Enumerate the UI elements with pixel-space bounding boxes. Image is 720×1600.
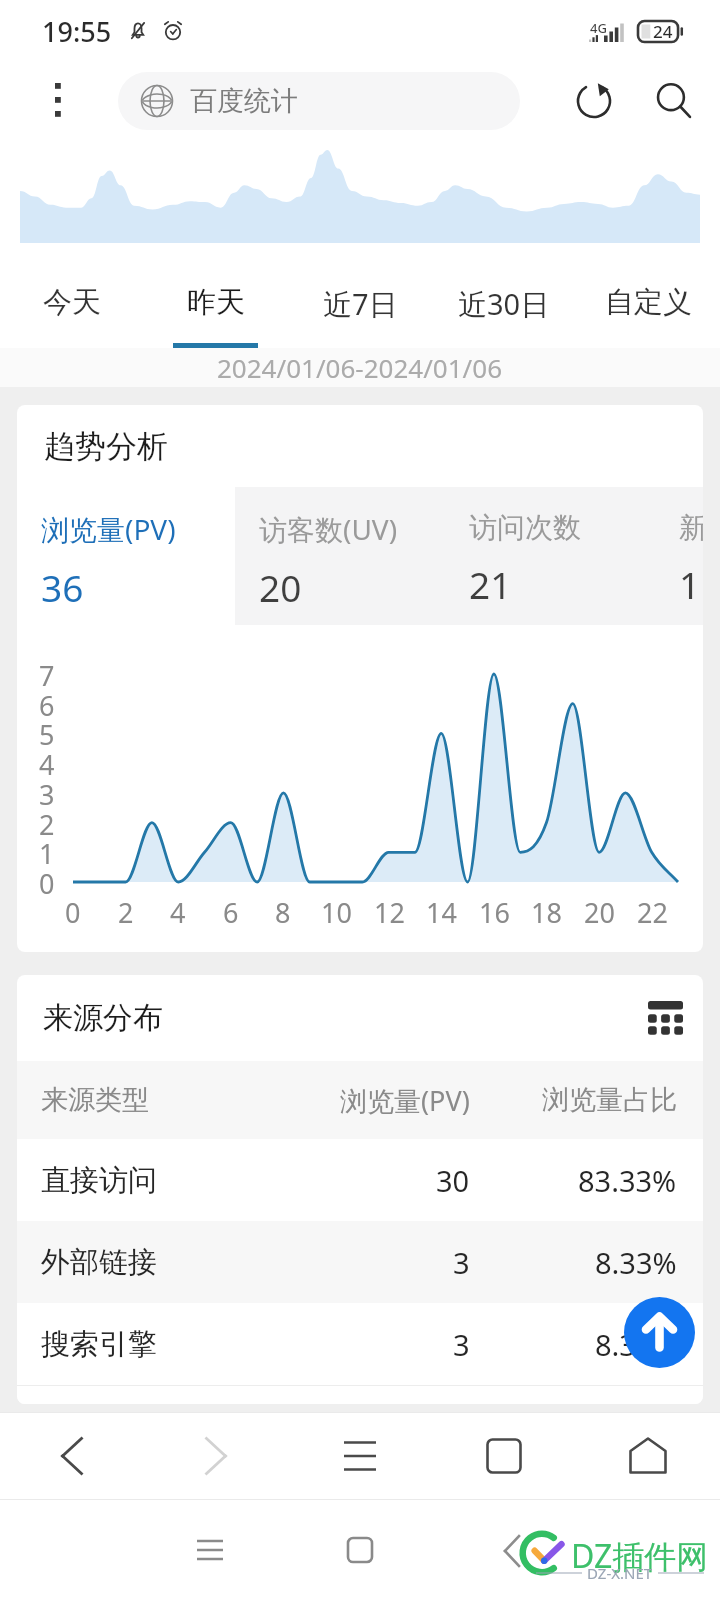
staticText: 新 bbox=[679, 510, 703, 545]
staticText: 8 bbox=[275, 894, 291, 928]
button[interactable]: 访客数(UV) bbox=[235, 487, 445, 625]
staticText: 4G bbox=[590, 19, 607, 37]
button[interactable]: Back bbox=[0, 1412, 144, 1500]
staticText: 7 bbox=[39, 657, 55, 691]
staticText: 4 bbox=[39, 746, 55, 780]
button[interactable]: Refresh bbox=[554, 62, 634, 140]
button[interactable]: More options bbox=[0, 62, 118, 140]
staticText: 22 bbox=[637, 894, 668, 928]
button[interactable]: Home bbox=[576, 1412, 720, 1500]
button[interactable]: 近7日 bbox=[288, 247, 432, 348]
button[interactable]: 昨天 bbox=[144, 247, 288, 348]
staticText: 趋势分析 bbox=[44, 427, 168, 466]
button[interactable]: 搜索引擎 bbox=[17, 1303, 703, 1385]
staticText: DZ插件网 bbox=[571, 1534, 709, 1578]
button[interactable]: 百度统计 bbox=[118, 72, 520, 130]
staticText: 2 bbox=[39, 806, 55, 840]
button[interactable]: 直接访问 bbox=[17, 1139, 703, 1221]
staticText: 2024/01/06-2024/01/06 bbox=[217, 350, 503, 385]
staticText: 百度统计 bbox=[190, 84, 298, 118]
staticText: 6 bbox=[223, 894, 239, 928]
button[interactable]: 今天 bbox=[0, 247, 144, 348]
staticText: 14 bbox=[426, 894, 457, 928]
staticText: 8.33% bbox=[595, 1325, 677, 1364]
button[interactable]: 访问次数 bbox=[445, 487, 655, 625]
staticText: 访问次数 bbox=[469, 510, 581, 545]
button[interactable]: Menu bbox=[288, 1412, 432, 1500]
staticText: DZ-X.NET bbox=[587, 1563, 653, 1583]
staticText: 搜索引擎 bbox=[41, 1326, 157, 1363]
staticText: 5 bbox=[39, 716, 55, 750]
button[interactable]: 近30日 bbox=[432, 247, 576, 348]
staticText: 来源分布 bbox=[43, 999, 163, 1037]
staticText: 8.33% bbox=[595, 1243, 677, 1282]
staticText: 1 bbox=[679, 559, 701, 609]
staticText: 近7日 bbox=[323, 284, 398, 324]
staticText: 3 bbox=[453, 1243, 470, 1282]
button[interactable]: 自定义 bbox=[576, 247, 720, 348]
button[interactable]: Recents bbox=[170, 1510, 250, 1590]
staticText: 21 bbox=[469, 559, 512, 609]
staticText: 浏览量占比 bbox=[542, 1083, 677, 1117]
staticText: 浏览量(PV) bbox=[41, 510, 176, 548]
button[interactable]: Grid view bbox=[636, 989, 694, 1047]
staticText: 2 bbox=[118, 894, 134, 928]
staticText: 直接访问 bbox=[41, 1162, 157, 1199]
staticText: 18 bbox=[531, 894, 562, 928]
staticText: 30 bbox=[436, 1161, 470, 1200]
button[interactable]: Forward bbox=[144, 1412, 288, 1500]
staticText: 4 bbox=[170, 894, 186, 928]
staticText: 自定义 bbox=[605, 284, 692, 321]
staticText: 3 bbox=[453, 1325, 470, 1364]
staticText: 6 bbox=[39, 687, 55, 721]
staticText: 83.33% bbox=[578, 1161, 677, 1200]
staticText: 3 bbox=[39, 776, 55, 810]
staticText: 10 bbox=[321, 894, 352, 928]
staticText: 12 bbox=[374, 894, 405, 928]
button[interactable]: Tabs bbox=[432, 1412, 576, 1500]
staticText: 浏览量(PV) bbox=[340, 1082, 470, 1119]
staticText: 外部链接 bbox=[41, 1244, 157, 1281]
button[interactable]: 浏览量(PV) bbox=[17, 487, 235, 625]
staticText: 0 bbox=[39, 865, 55, 899]
staticText: 36 bbox=[41, 562, 84, 612]
staticText: 昨天 bbox=[187, 284, 245, 321]
staticText: 16 bbox=[479, 894, 510, 928]
staticText: 19:55 bbox=[42, 13, 112, 50]
staticText: 20 bbox=[259, 562, 302, 612]
staticText: 来源类型 bbox=[41, 1083, 149, 1117]
button[interactable]: 新 bbox=[655, 487, 703, 625]
staticText: 1 bbox=[39, 835, 55, 869]
button[interactable]: Scroll to top bbox=[624, 1297, 695, 1368]
staticText: 今天 bbox=[43, 284, 101, 321]
staticText: 访客数(UV) bbox=[259, 510, 398, 548]
staticText: 近30日 bbox=[458, 284, 550, 324]
button[interactable]: Search bbox=[634, 62, 714, 140]
staticText: 0 bbox=[65, 894, 81, 928]
staticText: 20 bbox=[584, 894, 615, 928]
button[interactable]: 外部链接 bbox=[17, 1221, 703, 1303]
button[interactable]: Home bbox=[320, 1510, 400, 1590]
staticText: 24 bbox=[653, 20, 673, 41]
